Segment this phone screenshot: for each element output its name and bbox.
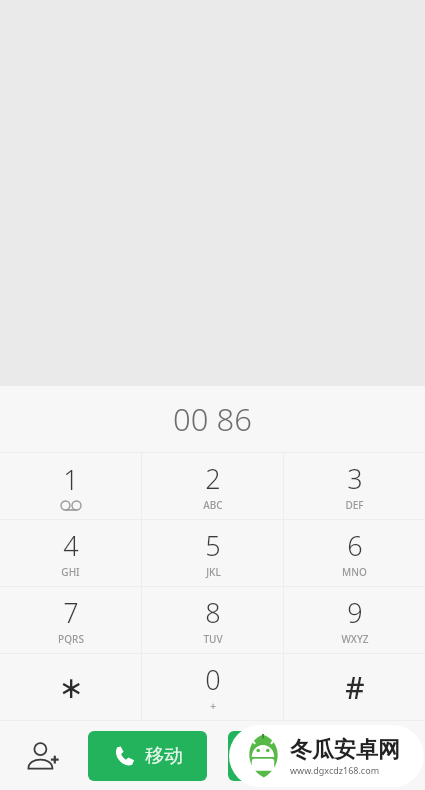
button[interactable]: 0 [142, 654, 283, 720]
staticText: 8 [205, 594, 221, 631]
staticText: 3 [347, 460, 363, 497]
staticText: TUV [203, 632, 223, 646]
staticText: 00 86 [173, 398, 252, 440]
button[interactable]: 移动 [88, 731, 207, 781]
staticText: 移动 [145, 744, 183, 768]
staticText: 5 [205, 527, 221, 564]
staticText: GHI [61, 565, 80, 579]
staticText: 4 [63, 527, 79, 564]
button[interactable]: # [284, 654, 425, 720]
staticText: # [345, 667, 365, 708]
button[interactable]: 4 [0, 520, 141, 586]
staticText: 7 [63, 594, 79, 631]
staticText: + [210, 699, 216, 713]
staticText: www.dgxcdz168.com [290, 764, 380, 776]
staticText: DEF [345, 498, 364, 512]
staticText: 6 [347, 527, 363, 564]
staticText: MNO [342, 565, 367, 579]
staticText: ∗ [58, 670, 84, 705]
button[interactable]: 1 [0, 453, 141, 519]
staticText: 1 [63, 461, 79, 498]
staticText: 0 [205, 661, 221, 698]
staticText: 冬瓜安卓网 [290, 736, 400, 764]
button[interactable]: 8 [142, 587, 283, 653]
button[interactable]: 5 [142, 520, 283, 586]
button[interactable]: Add contact [0, 721, 88, 790]
button[interactable]: Call [228, 731, 338, 781]
staticText: PQRS [58, 632, 84, 646]
button[interactable]: ∗ [0, 654, 141, 720]
staticText: 9 [347, 594, 363, 631]
button[interactable]: 2 [142, 453, 283, 519]
staticText: ABC [203, 498, 223, 512]
staticText: WXYZ [341, 632, 369, 646]
button[interactable]: 3 [284, 453, 425, 519]
button[interactable]: 6 [284, 520, 425, 586]
staticText: 2 [205, 460, 221, 497]
button[interactable]: 7 [0, 587, 141, 653]
button[interactable]: 9 [284, 587, 425, 653]
staticText: JKL [206, 565, 221, 579]
